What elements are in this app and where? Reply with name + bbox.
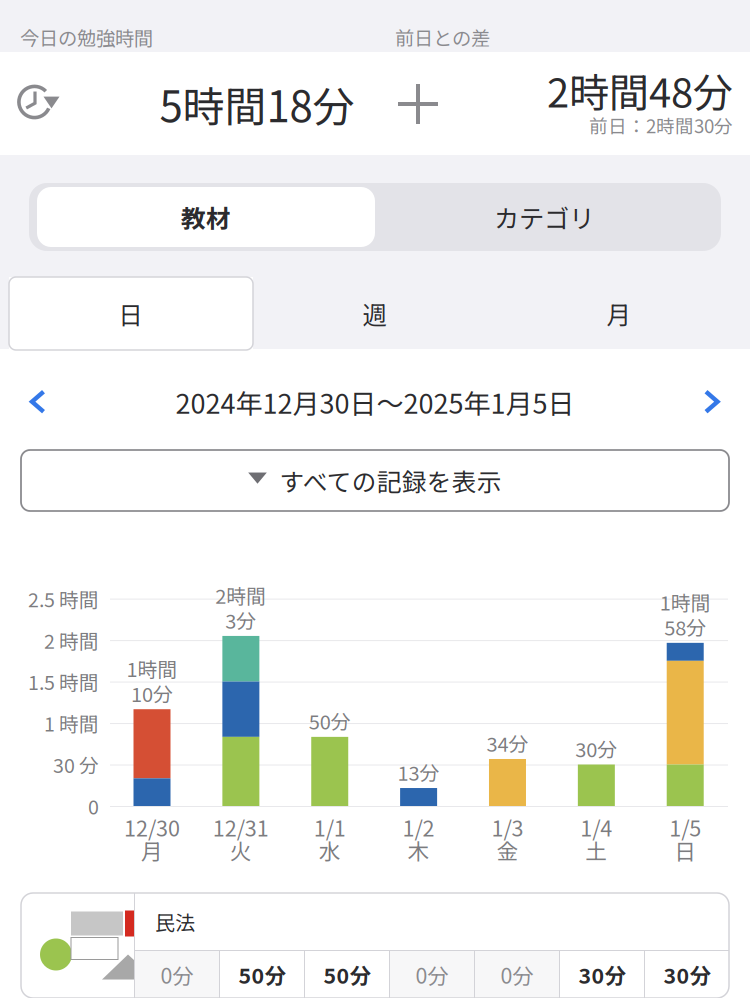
staticText: 週 bbox=[362, 296, 387, 331]
staticText: 月 bbox=[141, 834, 163, 866]
staticText: 3分 bbox=[225, 605, 256, 634]
staticText: 日 bbox=[118, 296, 143, 331]
staticText: 50分 bbox=[323, 959, 370, 990]
staticText: 1/4 bbox=[580, 811, 612, 843]
staticText: 12/30 bbox=[124, 811, 180, 843]
button[interactable]: 週 bbox=[253, 277, 497, 350]
staticText: 12/31 bbox=[213, 811, 269, 843]
staticText: 1時間 bbox=[660, 587, 711, 616]
staticText: 1/1 bbox=[314, 811, 346, 843]
staticText: 1時間 bbox=[126, 654, 177, 683]
staticText: カテゴリ bbox=[494, 199, 594, 235]
staticText: 土 bbox=[585, 834, 607, 866]
staticText: 34分 bbox=[486, 728, 528, 757]
staticText: 0分 bbox=[500, 959, 533, 990]
button[interactable]: 前の週 bbox=[7, 371, 69, 433]
staticText: 2時間48分 bbox=[547, 61, 733, 119]
staticText: 日 bbox=[674, 834, 696, 866]
button[interactable]: 民法 bbox=[21, 893, 729, 998]
staticText: 1 時間 bbox=[44, 709, 99, 737]
staticText: 10分 bbox=[131, 679, 173, 708]
staticText: 30分 bbox=[575, 734, 617, 763]
button[interactable]: 次の週 bbox=[681, 371, 743, 433]
staticText: すべての記録を表示 bbox=[280, 463, 502, 498]
staticText: 2024年12月30日〜2025年1月5日 bbox=[175, 382, 574, 422]
button[interactable]: 日 bbox=[9, 277, 253, 350]
staticText: 1/5 bbox=[669, 811, 701, 843]
staticText: 0 bbox=[88, 792, 99, 820]
staticText: 2.5 時間 bbox=[28, 584, 99, 613]
staticText: 水 bbox=[319, 834, 341, 866]
staticText: 0分 bbox=[160, 959, 193, 990]
button[interactable]: すべての記録を表示 bbox=[21, 450, 729, 511]
staticText: 58分 bbox=[664, 612, 706, 641]
button[interactable]: 教材 bbox=[37, 187, 375, 247]
staticText: 民法 bbox=[155, 907, 195, 936]
button[interactable]: 月 bbox=[497, 277, 741, 350]
staticText: 月 bbox=[606, 296, 631, 331]
staticText: 木 bbox=[408, 834, 430, 866]
staticText: 前日との差 bbox=[395, 23, 490, 51]
staticText: 1/2 bbox=[403, 811, 435, 843]
staticText: 前日：2時間30分 bbox=[589, 111, 733, 138]
staticText: 30分 bbox=[663, 959, 710, 990]
staticText: 50分 bbox=[238, 959, 285, 990]
staticText: 0分 bbox=[415, 959, 448, 990]
staticText: 教材 bbox=[181, 199, 231, 235]
staticText: 1/3 bbox=[491, 811, 523, 843]
staticText: 2時間 bbox=[215, 580, 266, 609]
staticText: 5時間18分 bbox=[159, 74, 354, 134]
button[interactable]: カテゴリ bbox=[375, 187, 713, 247]
staticText: 1.5 時間 bbox=[28, 667, 99, 696]
staticText: 火 bbox=[230, 834, 252, 866]
staticText: 50分 bbox=[309, 706, 351, 735]
staticText: 今日の勉強時間 bbox=[20, 23, 153, 51]
staticText: 13分 bbox=[398, 757, 440, 786]
staticText: 30分 bbox=[578, 959, 625, 990]
staticText: 30 分 bbox=[53, 750, 99, 779]
staticText: 金 bbox=[496, 834, 518, 866]
staticText: 2 時間 bbox=[44, 626, 99, 654]
